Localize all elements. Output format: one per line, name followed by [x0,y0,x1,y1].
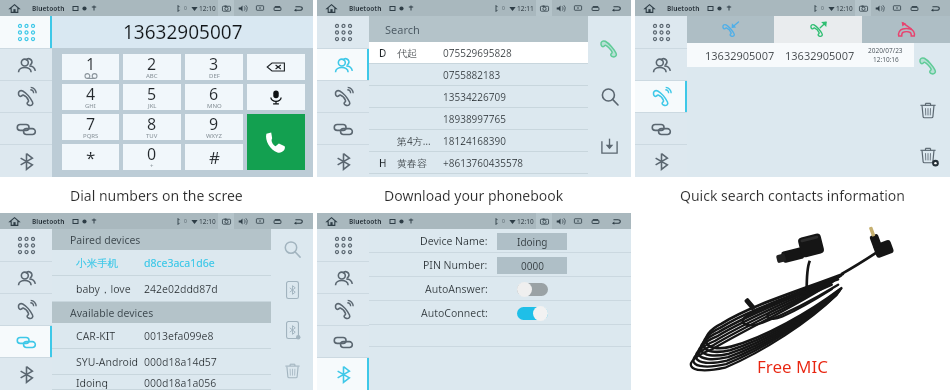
button[interactable]: Back [287,0,309,16]
button[interactable]: Dialpad [635,16,687,49]
button[interactable]: Search [369,16,588,42]
button[interactable]: Call log [635,81,687,113]
button[interactable]: Dialpad [0,229,52,262]
button[interactable]: Screenshot [218,0,234,16]
button[interactable]: Bluetooth [0,358,52,390]
button[interactable]: Contacts [317,262,369,294]
button[interactable]: Back [924,0,946,16]
button[interactable]: Connection [0,326,52,358]
button[interactable]: Dialpad [0,16,52,49]
button[interactable]: Idoing [52,375,271,390]
button[interactable]: Capture [251,0,268,16]
button[interactable]: Volume [234,213,251,229]
button[interactable]: Recents [268,213,287,229]
button[interactable]: Search [588,73,631,121]
button[interactable]: # [185,144,243,170]
button[interactable]: Delete [906,87,950,132]
button[interactable]: Available devices [52,302,271,323]
button[interactable]: Home [8,2,21,15]
button[interactable]: 6 [185,84,243,110]
button[interactable]: SYU-Android [52,349,271,375]
button[interactable]: Bluetooth [635,145,687,177]
button[interactable]: Screenshot [536,0,552,16]
button[interactable]: Home [643,2,656,15]
button[interactable]: Home [8,215,21,228]
button[interactable]: 18938997765 [369,108,588,130]
button[interactable]: Home [325,2,338,15]
button[interactable]: Bluetooth [317,358,369,390]
button[interactable]: Bluetooth [0,145,52,177]
button[interactable]: Screenshot [855,0,871,16]
button[interactable]: Connect [271,270,313,310]
button[interactable]: Connection [0,113,52,145]
button[interactable]: Capture [569,213,586,229]
button[interactable]: Contacts [635,49,687,81]
button[interactable]: 1 [62,54,119,80]
button[interactable]: 第4方… [369,130,588,152]
button[interactable]: Home [325,215,338,228]
button[interactable]: H [369,152,588,174]
button[interactable]: Contacts [317,49,369,81]
button[interactable]: 小米手机 [52,250,271,276]
button[interactable]: Outgoing calls [774,16,862,43]
button[interactable]: Download phonebook [588,121,631,169]
button[interactable]: Paired devices [52,229,271,250]
button[interactable]: 13534226709 [369,86,588,108]
button[interactable]: Call log [0,81,52,113]
button[interactable]: Back [605,0,627,16]
button[interactable]: Call log [0,294,52,326]
button[interactable]: Voice dial [247,84,305,110]
button[interactable]: Missed calls [862,16,950,43]
button[interactable]: Delete all [906,132,950,177]
button[interactable]: Volume [871,0,888,16]
button[interactable]: 5 [123,84,181,110]
button[interactable]: AutoAnswer: [369,277,631,301]
button[interactable]: 7 [62,114,119,140]
button[interactable]: Backspace [247,54,305,80]
button[interactable]: Incoming calls [687,16,774,43]
button[interactable]: Disconnect [271,310,313,350]
button[interactable]: 0 [123,144,181,170]
button[interactable]: Volume [234,0,251,16]
button[interactable]: 3 [185,54,243,80]
button[interactable]: Call [588,24,631,73]
button[interactable]: Volume [552,213,569,229]
button[interactable]: * [62,144,119,170]
button[interactable]: 4 [62,84,119,110]
button[interactable]: 13632905007 [52,16,313,48]
button[interactable]: Dialpad [317,16,369,49]
button[interactable]: Back [605,213,627,229]
button[interactable]: Connection [317,326,369,358]
button[interactable]: On [517,306,548,321]
button[interactable]: Contacts [0,262,52,294]
button[interactable]: Capture [888,0,905,16]
button[interactable]: Contacts [0,49,52,81]
button[interactable]: Call log [317,294,369,326]
button[interactable]: Bluetooth [317,145,369,177]
button[interactable]: Capture [251,213,268,229]
button[interactable]: 2 [123,54,181,80]
button[interactable]: Screenshot [536,213,552,229]
button[interactable]: Idoing [497,233,567,250]
button[interactable]: Call log [317,81,369,113]
button[interactable]: Volume [552,0,569,16]
button[interactable]: D [369,42,588,64]
button[interactable]: Search devices [271,229,313,270]
button[interactable]: Connection [635,113,687,145]
button[interactable]: Recents [586,213,605,229]
button[interactable]: PIN Number: [369,253,631,277]
button[interactable]: CAR-KIT [52,323,271,349]
button[interactable]: 9 [185,114,243,140]
button[interactable]: AutoConnect: [369,301,631,325]
button[interactable]: 13632905007 [687,43,914,67]
button[interactable]: Off [517,282,548,297]
button[interactable]: Call [906,43,950,87]
button[interactable]: Call [247,114,305,170]
button[interactable]: Dialpad [317,229,369,262]
button[interactable]: Screenshot [218,213,234,229]
button[interactable]: Recents [905,0,924,16]
button[interactable]: 0755882183 [369,64,588,86]
button[interactable]: Back [287,213,309,229]
button[interactable]: 0000 [497,257,567,274]
button[interactable]: baby，love [52,276,271,302]
